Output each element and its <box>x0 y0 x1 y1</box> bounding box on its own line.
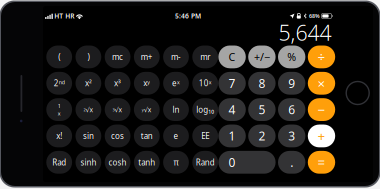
button[interactable]: cosh <box>105 151 130 174</box>
button[interactable]: C <box>218 45 246 68</box>
button[interactable]: cos <box>105 125 130 147</box>
staticText: x! <box>56 131 62 141</box>
button[interactable]: Rad <box>46 151 72 174</box>
staticText: 5 <box>258 102 265 117</box>
staticText: C <box>229 50 236 64</box>
button[interactable]: 2ⁿᵈ <box>46 72 72 95</box>
staticText: tanh <box>138 157 155 168</box>
staticText: mc <box>112 52 123 62</box>
staticText: √x <box>115 105 123 114</box>
staticText: ln <box>172 104 179 115</box>
button[interactable]: e <box>163 125 189 147</box>
staticText: m- <box>171 52 181 62</box>
staticText: % <box>287 50 296 64</box>
staticText: ÷ <box>317 48 325 66</box>
button[interactable]: log₁₀ <box>192 98 218 121</box>
button[interactable]: x² <box>75 72 101 95</box>
button[interactable]: y <box>134 98 160 121</box>
button[interactable]: + <box>308 125 335 147</box>
button[interactable]: 8 <box>248 72 276 95</box>
staticText: 2 <box>258 128 265 144</box>
button[interactable]: % <box>278 45 305 68</box>
button[interactable]: +/− <box>248 45 276 68</box>
staticText: 10ˣ <box>199 78 212 88</box>
staticText: 1 <box>229 128 236 144</box>
staticText: ) <box>87 52 89 62</box>
staticText: Rad <box>52 157 66 168</box>
staticText: +/− <box>254 50 270 64</box>
button[interactable]: x³ <box>105 72 130 95</box>
staticText: 5:46 PM <box>175 12 201 20</box>
staticText: tan <box>141 131 153 141</box>
button[interactable]: m+ <box>134 45 160 68</box>
button[interactable]: 5 <box>248 98 276 121</box>
staticText: = <box>317 153 325 171</box>
staticText: 9 <box>288 75 295 91</box>
button[interactable]: m- <box>163 45 189 68</box>
button[interactable]: 7 <box>218 72 246 95</box>
staticText: log₁₀ <box>196 104 214 115</box>
button[interactable]: sinh <box>75 151 101 174</box>
staticText: 2 <box>83 107 85 112</box>
button[interactable]: mc <box>105 45 130 68</box>
staticText: √x <box>144 105 152 114</box>
button[interactable]: × <box>308 72 335 95</box>
button[interactable]: 9 <box>278 72 305 95</box>
staticText: 2ⁿᵈ <box>54 78 65 88</box>
button[interactable]: 1 <box>218 125 246 147</box>
staticText: 0 <box>229 154 236 170</box>
staticText: 5,644 <box>278 18 331 47</box>
staticText: x³ <box>114 78 121 88</box>
button[interactable]: xʸ <box>134 72 160 95</box>
staticText: + <box>317 127 325 145</box>
staticText: EE <box>201 131 209 141</box>
staticText: . <box>290 154 293 170</box>
button[interactable]: ln <box>163 98 189 121</box>
staticText: 3 <box>288 128 295 144</box>
staticText: m+ <box>141 52 153 62</box>
staticText: cosh <box>109 157 127 168</box>
button[interactable]: mr <box>192 45 218 68</box>
button[interactable]: ) <box>75 45 101 68</box>
staticText: × <box>317 74 325 92</box>
button[interactable]: 3 <box>278 125 305 147</box>
staticText: sin <box>83 131 94 141</box>
button[interactable]: − <box>308 98 335 121</box>
button[interactable]: = <box>308 151 335 174</box>
staticText: √x <box>85 105 93 114</box>
button[interactable]: . <box>278 151 305 174</box>
staticText: cos <box>111 131 124 141</box>
button[interactable]: 10ˣ <box>192 72 218 95</box>
staticText: Rand <box>196 157 215 168</box>
button[interactable]: 2 <box>75 98 101 121</box>
staticText: y <box>142 107 144 112</box>
button[interactable]: Rand <box>192 151 218 174</box>
staticText: eˣ <box>172 78 180 88</box>
staticText: HT HR <box>54 12 74 20</box>
staticText: mr <box>200 52 210 62</box>
button[interactable]: EE <box>192 125 218 147</box>
button[interactable]: x! <box>46 125 72 147</box>
button[interactable]: 0 <box>218 151 276 174</box>
button[interactable]: tan <box>134 125 160 147</box>
button[interactable]: tanh <box>134 151 160 174</box>
staticText: 8 <box>258 75 265 91</box>
button[interactable]: sin <box>75 125 101 147</box>
button[interactable]: 6 <box>278 98 305 121</box>
button[interactable]: eˣ <box>163 72 189 95</box>
button[interactable]: 2 <box>248 125 276 147</box>
button[interactable]: π <box>163 151 189 174</box>
staticText: ( <box>58 52 60 62</box>
button[interactable]: ( <box>46 45 72 68</box>
staticText: π <box>173 157 178 168</box>
button[interactable]: 1 <box>46 98 72 121</box>
button[interactable]: 3 <box>105 98 130 121</box>
staticText: 7 <box>229 75 236 91</box>
staticText: 68% <box>309 12 320 20</box>
staticText: 3 <box>113 107 115 112</box>
button[interactable]: ÷ <box>308 45 335 68</box>
staticText: 6 <box>288 102 295 117</box>
staticText: sinh <box>80 157 96 168</box>
staticText: xʸ <box>143 78 150 88</box>
button[interactable]: 4 <box>218 98 246 121</box>
